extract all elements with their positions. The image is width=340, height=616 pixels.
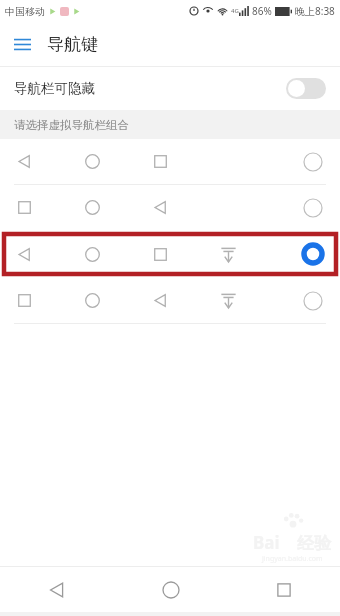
- button[interactable]: [0, 185, 340, 230]
- button[interactable]: Recent apps: [227, 567, 340, 612]
- staticText: 导航栏可隐藏: [14, 80, 95, 97]
- button[interactable]: [0, 139, 340, 184]
- staticText: 4G: [231, 7, 239, 15]
- staticText: jingyan.baidu.com: [262, 554, 323, 564]
- staticText: 请选择虚拟导航栏组合: [14, 118, 129, 132]
- staticText: Bai 经验: [253, 531, 332, 554]
- staticText: 导航键: [47, 34, 98, 55]
- staticText: 中国移动: [5, 5, 45, 18]
- staticText: 86%: [252, 4, 272, 18]
- button[interactable]: 导航栏可隐藏: [0, 67, 340, 110]
- button[interactable]: Menu: [0, 22, 44, 66]
- staticText: 晚上8:38: [295, 4, 335, 18]
- button[interactable]: Back: [0, 567, 114, 612]
- button[interactable]: Home: [114, 567, 227, 612]
- button[interactable]: [0, 278, 340, 323]
- button[interactable]: [0, 230, 340, 278]
